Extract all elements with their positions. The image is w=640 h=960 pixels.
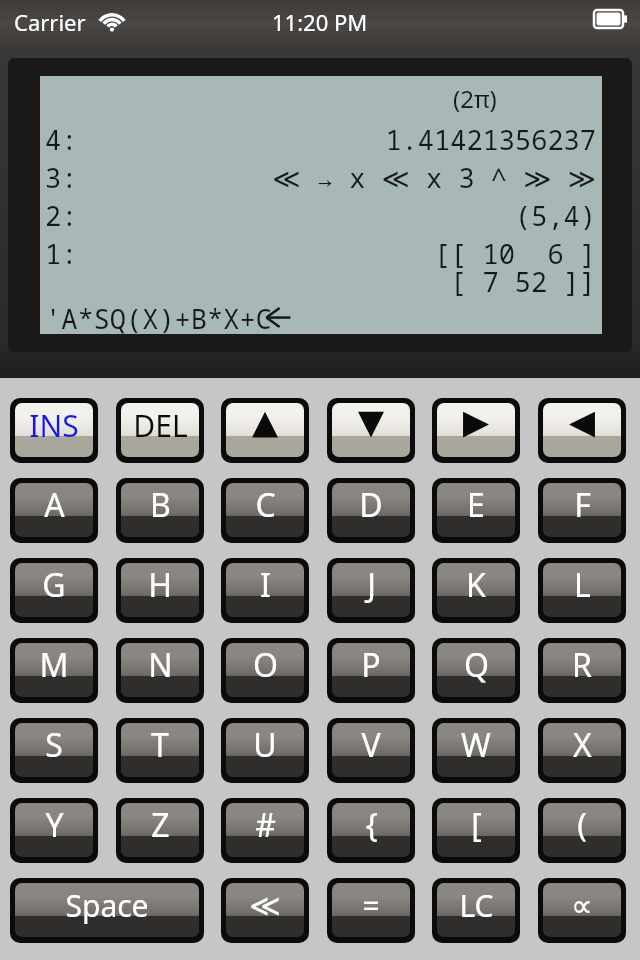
staticText: INS bbox=[29, 405, 79, 446]
button[interactable]: B bbox=[116, 478, 204, 543]
button[interactable]: LC bbox=[432, 878, 520, 943]
staticText: 1.41421356237 bbox=[40, 121, 596, 158]
button[interactable]: J bbox=[327, 558, 415, 623]
staticText: B bbox=[150, 483, 171, 527]
button[interactable]: S bbox=[10, 718, 98, 783]
staticText: S bbox=[45, 723, 63, 767]
button[interactable]: H bbox=[116, 558, 204, 623]
staticText: X bbox=[573, 723, 592, 767]
staticText: M bbox=[39, 643, 69, 687]
staticText: K bbox=[466, 563, 486, 607]
button[interactable]: DEL bbox=[116, 398, 204, 463]
staticText: U bbox=[253, 723, 277, 767]
button[interactable]: X bbox=[538, 718, 626, 783]
button[interactable]: = bbox=[327, 878, 415, 943]
staticText: Y bbox=[45, 803, 64, 847]
button[interactable]: P bbox=[327, 638, 415, 703]
staticText: = bbox=[362, 885, 380, 926]
staticText: ≪ → x ≪ x 3 ^ ≫ ≫ bbox=[40, 159, 596, 196]
staticText: F bbox=[574, 483, 591, 527]
staticText: A bbox=[44, 483, 65, 527]
staticText: G bbox=[42, 563, 66, 607]
staticText: H bbox=[148, 563, 172, 607]
button[interactable]: Z bbox=[116, 798, 204, 863]
button[interactable]: Q bbox=[432, 638, 520, 703]
staticText: W bbox=[461, 723, 491, 767]
button[interactable]: ∝ bbox=[538, 878, 626, 943]
staticText: O bbox=[253, 643, 278, 687]
staticText: 4: bbox=[45, 121, 78, 158]
staticText: 11:20 PM bbox=[272, 7, 368, 37]
staticText: 1: bbox=[45, 235, 78, 272]
button[interactable]: N bbox=[116, 638, 204, 703]
staticText: E bbox=[467, 483, 485, 527]
button[interactable]: Up bbox=[221, 398, 309, 463]
staticText: # bbox=[255, 803, 276, 847]
button[interactable]: W bbox=[432, 718, 520, 783]
staticText: L bbox=[574, 563, 591, 607]
button[interactable]: Right bbox=[538, 398, 626, 463]
staticText: P bbox=[361, 643, 381, 687]
button[interactable]: ≪ bbox=[221, 878, 309, 943]
button[interactable]: D bbox=[327, 478, 415, 543]
button[interactable]: V bbox=[327, 718, 415, 783]
button[interactable]: I bbox=[221, 558, 309, 623]
staticText: T bbox=[151, 723, 169, 767]
staticText: ≪ bbox=[249, 888, 281, 923]
staticText: 2: bbox=[45, 197, 78, 234]
staticText: Q bbox=[464, 643, 489, 687]
staticText: N bbox=[148, 643, 173, 687]
staticText: DEL bbox=[133, 405, 188, 446]
staticText: J bbox=[367, 563, 376, 607]
button[interactable]: O bbox=[221, 638, 309, 703]
staticText: Space bbox=[65, 885, 149, 926]
staticText: Carrier bbox=[14, 7, 86, 37]
staticText: (2π) bbox=[453, 82, 497, 115]
button[interactable]: [ bbox=[432, 798, 520, 863]
staticText: [[ 10 6 ] bbox=[40, 235, 596, 272]
button[interactable]: INS bbox=[10, 398, 98, 463]
button[interactable]: { bbox=[327, 798, 415, 863]
staticText: 3: bbox=[45, 159, 78, 196]
staticText: { bbox=[365, 803, 378, 847]
button[interactable]: Down bbox=[327, 398, 415, 463]
button[interactable]: Y bbox=[10, 798, 98, 863]
button[interactable]: T bbox=[116, 718, 204, 783]
staticText: [ 7 52 ]] bbox=[450, 263, 596, 300]
staticText: R bbox=[572, 643, 592, 687]
staticText: C bbox=[255, 483, 276, 527]
button[interactable]: G bbox=[10, 558, 98, 623]
staticText: (5,4) bbox=[40, 197, 596, 234]
button[interactable]: F bbox=[538, 478, 626, 543]
staticText: ∝ bbox=[571, 888, 593, 923]
button[interactable]: K bbox=[432, 558, 520, 623]
button[interactable]: E bbox=[432, 478, 520, 543]
staticText: LC bbox=[459, 885, 494, 926]
staticText: ( bbox=[577, 803, 587, 847]
button[interactable]: ( bbox=[538, 798, 626, 863]
button[interactable]: Space bbox=[10, 878, 204, 943]
staticText: 'A*SQ(X)+B*X+C bbox=[45, 300, 272, 334]
button[interactable]: Left bbox=[432, 398, 520, 463]
button[interactable]: M bbox=[10, 638, 98, 703]
button[interactable]: A bbox=[10, 478, 98, 543]
button[interactable]: R bbox=[538, 638, 626, 703]
staticText: D bbox=[359, 483, 383, 527]
button[interactable]: # bbox=[221, 798, 309, 863]
button[interactable]: C bbox=[221, 478, 309, 543]
staticText: [ bbox=[471, 803, 482, 847]
staticText: I bbox=[260, 563, 271, 607]
staticText: V bbox=[361, 723, 381, 767]
staticText: Z bbox=[151, 803, 170, 847]
button[interactable]: U bbox=[221, 718, 309, 783]
button[interactable]: L bbox=[538, 558, 626, 623]
